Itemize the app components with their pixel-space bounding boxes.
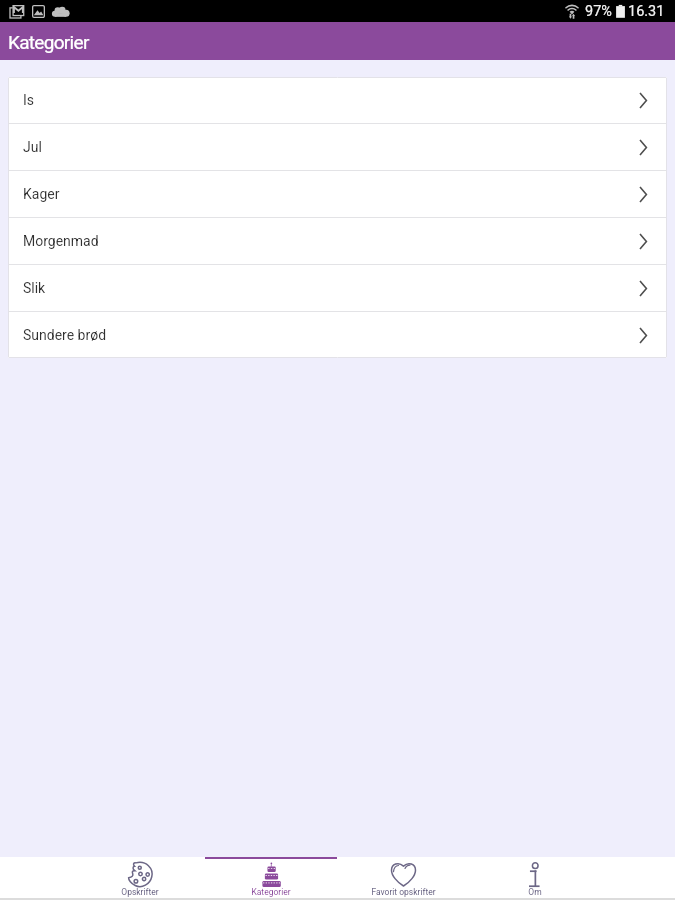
button[interactable]: Morgenmad: [8, 218, 667, 264]
button[interactable]: Jul: [8, 124, 667, 170]
button[interactable]: Favorit opskrifter: [337, 857, 469, 898]
button[interactable]: Kategorier: [205, 857, 337, 898]
button[interactable]: Is: [8, 77, 667, 123]
staticText: Slik: [23, 280, 46, 296]
staticText: Om: [528, 887, 542, 897]
staticText: Jul: [23, 139, 42, 155]
button[interactable]: Kager: [8, 171, 667, 217]
staticText: 16.31: [628, 3, 665, 20]
button[interactable]: Om: [469, 857, 601, 898]
staticText: Opskrifter: [121, 887, 159, 897]
staticText: 97%: [585, 3, 612, 20]
button[interactable]: Opskrifter: [74, 857, 205, 898]
button[interactable]: Sundere brød: [8, 312, 667, 358]
staticText: Morgenmad: [23, 233, 99, 249]
staticText: Kategorier: [251, 887, 291, 897]
staticText: Kager: [23, 186, 60, 202]
staticText: Favorit opskrifter: [371, 887, 436, 897]
staticText: Kategorier: [8, 31, 89, 53]
button[interactable]: Slik: [8, 265, 667, 311]
staticText: Is: [23, 92, 35, 108]
staticText: Sundere brød: [23, 327, 107, 343]
